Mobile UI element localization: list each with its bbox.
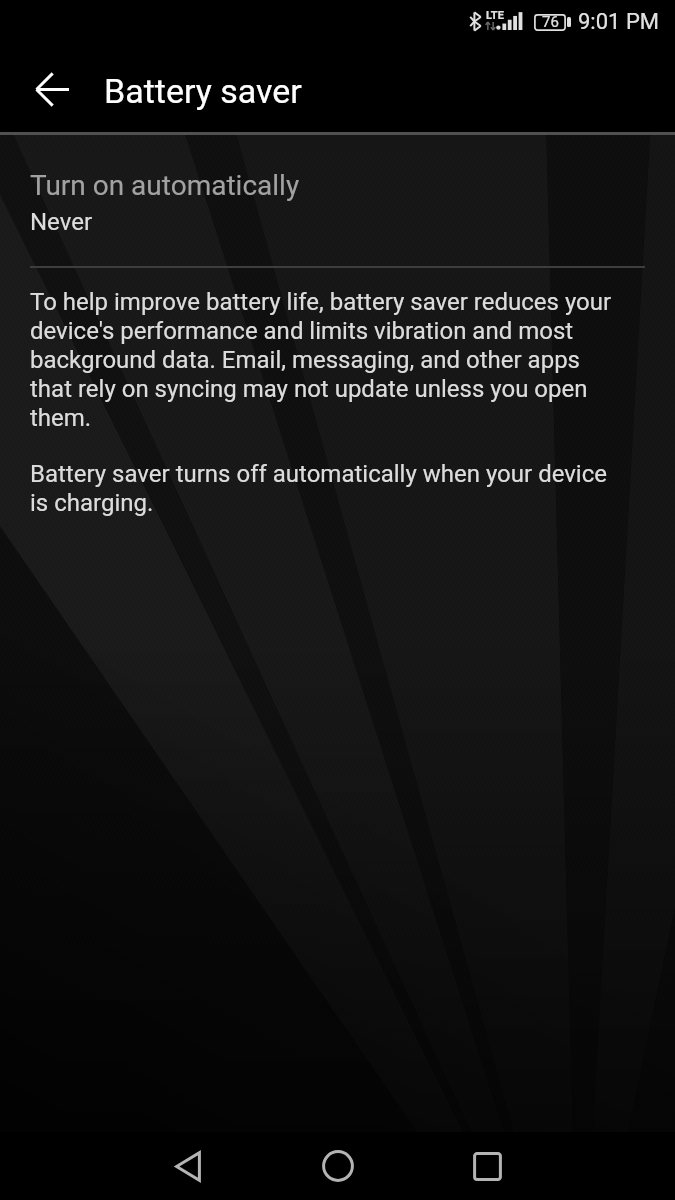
staticText: Turn on automatically — [30, 169, 300, 202]
staticText: Never — [30, 208, 93, 236]
staticText: LTE — [486, 9, 504, 22]
button[interactable]: Recent apps — [456, 1135, 518, 1197]
button[interactable]: Back — [157, 1135, 219, 1197]
button[interactable]: Home — [307, 1135, 369, 1197]
staticText: Battery saver turns off automatically wh… — [30, 460, 620, 517]
staticText: Battery saver — [104, 71, 302, 111]
staticText: 9:01 PM — [578, 9, 659, 35]
button[interactable]: Back — [21, 58, 83, 120]
button[interactable]: Turn on automatically — [0, 169, 675, 244]
staticText: To help improve battery life, battery sa… — [30, 288, 620, 432]
staticText: 76 — [542, 13, 559, 31]
